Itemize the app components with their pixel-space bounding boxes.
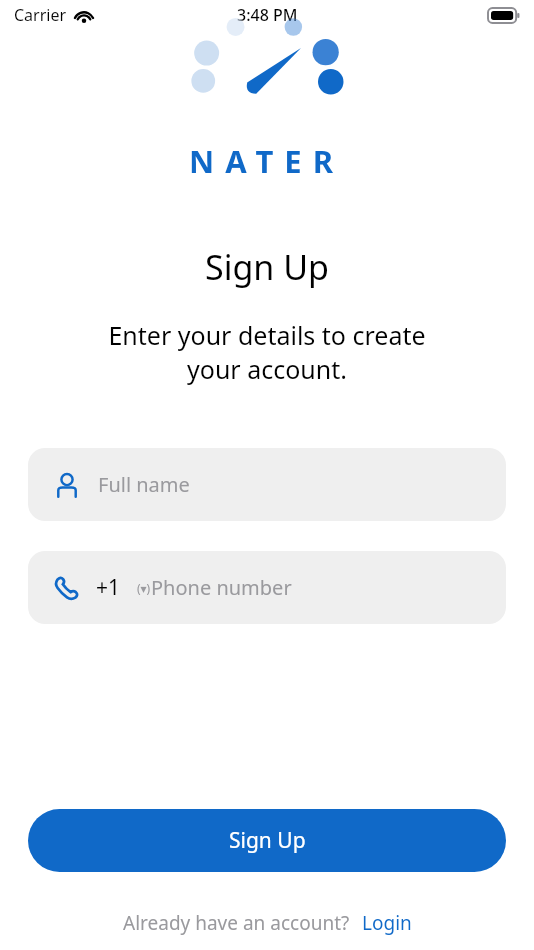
staticText: Full name (98, 471, 190, 498)
staticText: Already have an account? (123, 910, 350, 936)
other: Full name (54, 472, 80, 498)
staticText: +1 (96, 573, 121, 602)
staticText: NATER (189, 140, 345, 182)
button[interactable]: Login (362, 910, 412, 936)
button[interactable]: Phone number (28, 551, 506, 624)
staticText: Sign Up (205, 244, 329, 290)
staticText: 3:48 PM (237, 4, 298, 26)
staticText: Enter your details to create your accoun… (108, 318, 426, 386)
staticText: Phone number (151, 574, 292, 601)
button[interactable]: Full name (28, 448, 506, 521)
staticText: (▾) (137, 580, 151, 596)
button[interactable]: Sign Up (28, 809, 506, 872)
other: Phone number (54, 575, 80, 601)
staticText: Sign Up (229, 826, 306, 855)
staticText: Carrier (14, 4, 67, 26)
staticText: Login (362, 910, 412, 936)
